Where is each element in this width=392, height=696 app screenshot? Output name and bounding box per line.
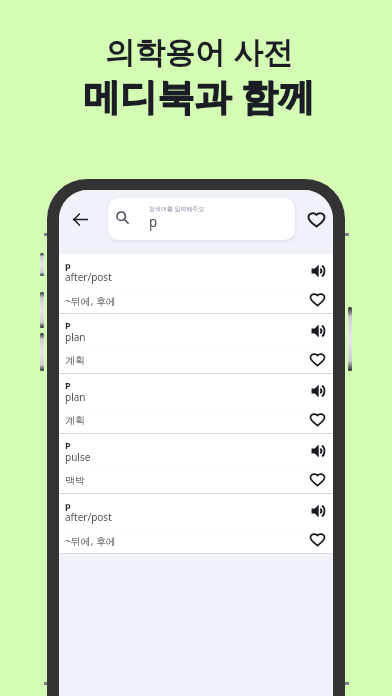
button[interactable]: Favorites xyxy=(302,205,330,233)
button[interactable]: Favorite xyxy=(299,405,333,433)
staticText: P xyxy=(65,439,71,451)
button[interactable]: Back xyxy=(66,205,94,233)
staticText: plan xyxy=(65,330,86,344)
staticText: P xyxy=(65,319,71,331)
staticText: p xyxy=(65,259,71,271)
staticText: after/post xyxy=(65,510,112,524)
button[interactable]: Favorite xyxy=(299,345,333,373)
staticText: p xyxy=(65,499,71,511)
staticText: plan xyxy=(65,390,86,404)
staticText: 검색어를 입력해주요 xyxy=(149,205,205,213)
staticText: P xyxy=(65,379,71,391)
staticText: after/post xyxy=(65,270,112,284)
staticText: ~뒤에, 후에 xyxy=(65,534,116,548)
button[interactable]: Play pronunciation xyxy=(299,376,333,405)
button[interactable]: Favorite xyxy=(299,465,333,493)
button[interactable]: 검색어를 입력해주요 xyxy=(108,198,295,240)
button[interactable]: Favorite xyxy=(299,285,333,313)
button[interactable]: Play pronunciation xyxy=(299,256,333,285)
button[interactable]: P xyxy=(59,314,333,374)
staticText: pulse xyxy=(65,450,91,464)
staticText: 계획 xyxy=(65,414,85,427)
staticText: ~뒤에, 후에 xyxy=(65,294,116,308)
staticText: 의학용어 사전 xyxy=(105,31,293,72)
staticText: 메디북과 함께 xyxy=(83,70,315,121)
staticText: 맥박 xyxy=(65,474,85,487)
button[interactable]: Play pronunciation xyxy=(299,316,333,345)
button[interactable]: p xyxy=(59,254,333,314)
button[interactable]: Favorite xyxy=(299,525,333,553)
button[interactable]: Play pronunciation xyxy=(299,436,333,465)
button[interactable]: Play pronunciation xyxy=(299,496,333,525)
button[interactable]: P xyxy=(59,374,333,434)
staticText: p xyxy=(149,213,158,231)
staticText: 계획 xyxy=(65,354,85,367)
button[interactable]: p xyxy=(59,494,333,554)
button[interactable]: P xyxy=(59,434,333,494)
